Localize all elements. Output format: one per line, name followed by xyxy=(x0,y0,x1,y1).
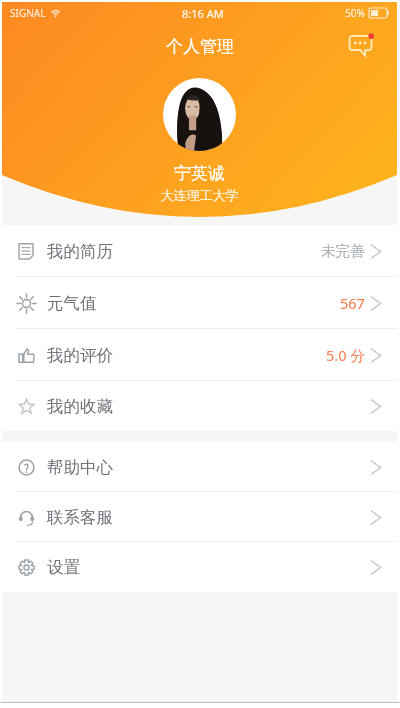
button[interactable]: 我的评价 xyxy=(2,329,397,381)
staticText: SIGNAL xyxy=(10,6,46,20)
staticText: 5.0 分 xyxy=(326,345,365,365)
staticText: 联系客服 xyxy=(47,507,113,528)
button[interactable]: 设置 xyxy=(2,542,397,592)
staticText: 大连理工大学 xyxy=(2,187,397,203)
staticText: 我的简历 xyxy=(47,241,113,262)
staticText: 50% xyxy=(345,6,365,20)
staticText: 帮助中心 xyxy=(47,457,113,478)
button[interactable]: 联系客服 xyxy=(2,492,397,542)
staticText: 宁英诚 xyxy=(2,163,397,184)
button[interactable]: 元气值 xyxy=(2,277,397,329)
button[interactable]: 我的收藏 xyxy=(2,381,397,431)
staticText: 个人管理 xyxy=(166,36,234,57)
button[interactable]: Messages xyxy=(346,31,376,61)
staticText: 我的收藏 xyxy=(47,396,113,417)
button[interactable]: 帮助中心 xyxy=(2,442,397,492)
staticText: 567 xyxy=(340,293,365,313)
staticText: 未完善 xyxy=(321,242,365,260)
staticText: 我的评价 xyxy=(47,345,113,366)
staticText: 8:16 AM xyxy=(182,6,224,21)
button[interactable]: 我的简历 xyxy=(2,225,397,277)
staticText: 元气值 xyxy=(47,293,97,314)
staticText: 设置 xyxy=(47,557,80,578)
